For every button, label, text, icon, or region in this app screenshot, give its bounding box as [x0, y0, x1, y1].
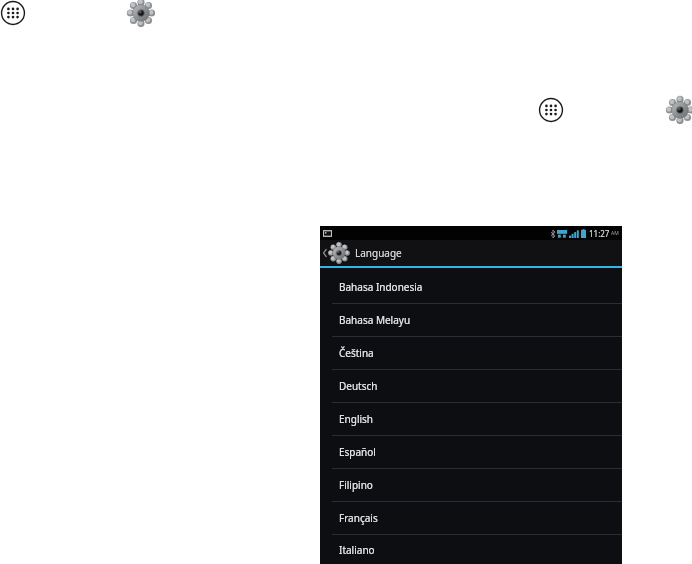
button[interactable]: English	[320, 403, 622, 435]
staticText: Español	[339, 445, 376, 459]
button[interactable]: Settings	[128, 0, 154, 26]
button[interactable]: Settings	[667, 97, 692, 123]
staticText: English	[339, 412, 374, 426]
staticText: Deutsch	[339, 379, 378, 393]
staticText: Filipino	[339, 478, 373, 492]
button[interactable]: Language	[320, 240, 622, 266]
staticText: AM	[611, 230, 619, 237]
staticText: Language	[355, 246, 402, 260]
button[interactable]: Bahasa Indonesia	[320, 271, 622, 303]
button[interactable]: Filipino	[320, 469, 622, 501]
button[interactable]: Italiano	[320, 535, 622, 564]
staticText: Bahasa Melayu	[339, 313, 411, 327]
button[interactable]: Apps	[538, 97, 564, 123]
button[interactable]: Français	[320, 502, 622, 534]
staticText: Italiano	[339, 543, 375, 557]
button[interactable]: Čeština	[320, 337, 622, 369]
staticText: Français	[339, 511, 378, 525]
button[interactable]: Español	[320, 436, 622, 468]
staticText: Bahasa Indonesia	[339, 280, 423, 294]
staticText: Čeština	[339, 346, 374, 360]
button[interactable]: Bahasa Melayu	[320, 304, 622, 336]
button[interactable]: Deutsch	[320, 370, 622, 402]
button[interactable]: Apps	[0, 0, 26, 26]
staticText: 11:27	[589, 228, 610, 239]
